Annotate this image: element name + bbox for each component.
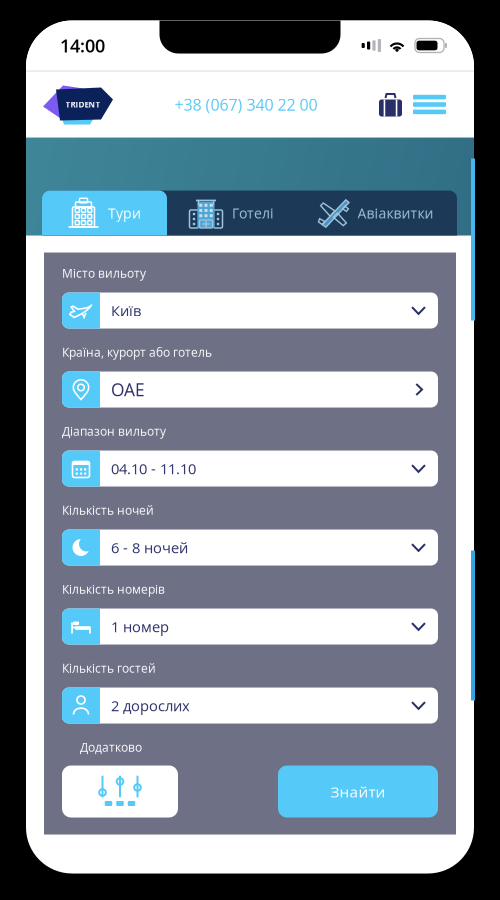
button[interactable]: Menu (402, 95, 474, 113)
staticText: +38 (067) 340 22 00 (174, 94, 317, 115)
button[interactable]: 2 дорослих (62, 687, 438, 723)
staticText: 1 номер (111, 616, 169, 636)
staticText: Місто вильоту (62, 265, 146, 281)
staticText: Діапазон вильоту (62, 423, 166, 439)
staticText: Кількість ночей (62, 502, 154, 518)
button[interactable]: Знайти (278, 765, 438, 817)
staticText: Київ (111, 300, 141, 320)
staticText: Авіаквитки (358, 203, 434, 223)
staticText: TRIDENT (65, 99, 100, 110)
staticText: 6 - 8 ночей (111, 537, 188, 557)
button[interactable]: Авіаквитки (292, 190, 434, 235)
button[interactable]: 6 - 8 ночей (62, 529, 438, 565)
staticText: Знайти (330, 781, 385, 802)
staticText: Готелі (232, 203, 274, 223)
staticText: OAE (111, 378, 145, 401)
button[interactable]: 04.10 - 11.10 (62, 450, 438, 486)
staticText: 2 дорослих (111, 695, 190, 715)
staticText: 04.10 - 11.10 (111, 458, 196, 478)
staticText: Кількість номерів (62, 581, 165, 597)
button[interactable]: +38 (067) 340 22 00 (174, 94, 317, 115)
staticText: 14:00 (60, 33, 105, 58)
button[interactable]: My trips (379, 93, 402, 116)
button[interactable]: 1 номер (62, 608, 438, 644)
button[interactable]: OAE (62, 371, 438, 407)
button[interactable]: Тури (42, 190, 167, 235)
button[interactable]: Додаткові фільтри (62, 765, 178, 817)
staticText: Додатково (80, 739, 142, 755)
staticText: Кількість гостей (62, 660, 156, 676)
staticText: Країна, курорт або готель (62, 344, 212, 360)
staticText: Тури (108, 203, 141, 223)
button[interactable]: Київ (62, 292, 438, 328)
button[interactable]: Trident (26, 82, 113, 126)
button[interactable]: Готелі (167, 190, 292, 235)
